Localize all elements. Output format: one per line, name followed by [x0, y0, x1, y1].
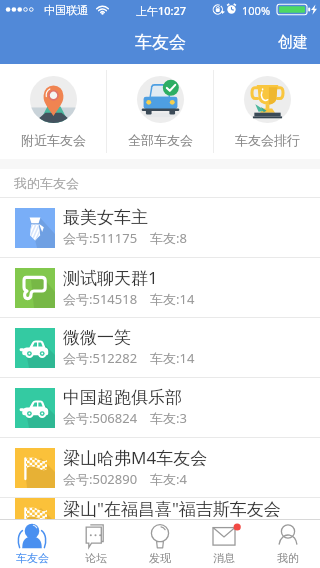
staticText: 全部车友会 [128, 132, 193, 148]
staticText: 中国超跑俱乐部 [63, 387, 182, 408]
button[interactable]: 梁山"在福昌喜"福吉斯车友会 [0, 498, 320, 519]
staticText: 车友会 [135, 32, 186, 53]
button[interactable]: 微微一笑 [0, 318, 320, 378]
staticText: 消息 [213, 551, 235, 565]
staticText: 车友:14 [150, 349, 195, 367]
staticText: 车友:14 [150, 290, 195, 308]
staticText: 梁山哈弗M4车友会 [63, 446, 208, 469]
button[interactable]: 测试聊天群1 [0, 258, 320, 318]
staticText: 会号:502890 [63, 470, 138, 488]
staticText: 最美女车主 [63, 207, 148, 228]
button[interactable]: 车友会排行 [214, 64, 320, 159]
button[interactable]: 我的 [256, 520, 320, 568]
button[interactable]: 中国超跑俱乐部 [0, 378, 320, 438]
staticText: 车友:3 [150, 409, 187, 427]
staticText: 会号:512282 [63, 349, 138, 367]
button[interactable]: 消息 [192, 520, 256, 568]
staticText: 上午10:27 [136, 3, 187, 18]
button[interactable]: 车友会 [0, 520, 64, 568]
staticText: 车友:4 [150, 470, 187, 488]
staticText: 会号:506824 [63, 409, 138, 427]
staticText: 100% [242, 3, 271, 18]
button[interactable]: 发现 [128, 520, 192, 568]
button[interactable]: 附近车友会 [0, 64, 106, 159]
staticText: 创建 [278, 33, 308, 52]
staticText: 我的车友会 [14, 175, 79, 191]
staticText: 我的 [277, 551, 299, 565]
staticText: 车友:8 [150, 229, 187, 247]
button[interactable]: 最美女车主 [0, 198, 320, 258]
staticText: 发现 [149, 551, 171, 565]
staticText: 梁山"在福昌喜"福吉斯车友会 [63, 497, 281, 518]
staticText: 测试聊天群1 [63, 266, 158, 289]
staticText: 论坛 [85, 551, 107, 565]
staticText: 会号:514518 [63, 290, 138, 308]
staticText: 中国联通 [44, 3, 88, 17]
staticText: 会号:511175 [63, 229, 138, 247]
button[interactable]: 论坛 [64, 520, 128, 568]
button[interactable]: 创建 [266, 20, 320, 64]
staticText: 附近车友会 [21, 132, 86, 148]
staticText: 微微一笑 [63, 327, 131, 348]
staticText: 车友会 [16, 551, 49, 565]
staticText: 车友会排行 [235, 132, 300, 148]
button[interactable]: 全部车友会 [107, 64, 213, 159]
button[interactable]: 梁山哈弗M4车友会 [0, 438, 320, 498]
